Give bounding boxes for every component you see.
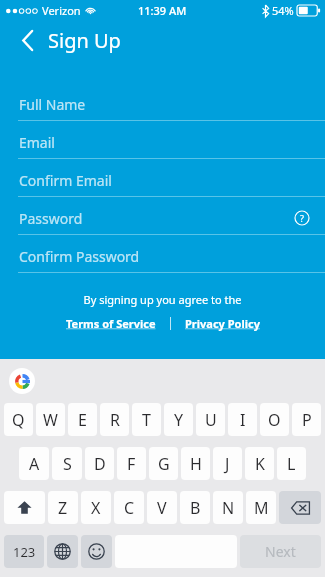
staticText: E <box>78 409 87 431</box>
button[interactable]: Back <box>12 25 42 55</box>
staticText: P <box>302 409 312 431</box>
staticText: H <box>190 453 202 475</box>
staticText: 54% <box>272 3 294 18</box>
staticText: X <box>91 497 101 519</box>
button[interactable]: C <box>114 491 144 524</box>
staticText: Q <box>12 409 25 431</box>
staticText: Sign Up <box>48 27 121 54</box>
button[interactable]: Next <box>240 535 321 568</box>
staticText: ? <box>300 212 304 224</box>
staticText: G <box>158 453 170 475</box>
staticText: V <box>157 497 167 519</box>
staticText: B <box>190 497 201 519</box>
staticText: L <box>287 453 296 475</box>
button[interactable]: H <box>181 447 210 480</box>
staticText: T <box>142 409 151 431</box>
staticText: Verizon <box>42 3 81 18</box>
staticText: Confirm Email <box>19 171 112 190</box>
staticText: I <box>240 409 246 431</box>
button[interactable]: Change language <box>47 535 78 568</box>
button[interactable]: Terms of Service <box>62 314 160 333</box>
button[interactable]: Y <box>164 403 193 436</box>
button[interactable]: Password <box>0 202 325 240</box>
button[interactable]: N <box>213 491 243 524</box>
button[interactable]: Q <box>4 403 33 436</box>
button[interactable]: D <box>85 447 114 480</box>
button[interactable]: J <box>213 447 242 480</box>
staticText: M <box>254 497 269 519</box>
staticText: 123 <box>13 543 36 561</box>
button[interactable]: G <box>149 447 178 480</box>
staticText: D <box>94 453 106 475</box>
button[interactable]: Google <box>9 368 35 394</box>
staticText: Y <box>174 409 184 431</box>
button[interactable]: Full Name <box>0 88 325 126</box>
button[interactable]: S <box>52 447 82 480</box>
staticText: C <box>124 497 135 519</box>
button[interactable]: Confirm Password <box>0 240 325 278</box>
staticText: U <box>205 409 217 431</box>
button[interactable]: Z <box>48 491 78 524</box>
staticText: Full Name <box>19 95 86 114</box>
staticText: By signing up you agree to the <box>0 292 325 307</box>
staticText: O <box>268 409 281 431</box>
button[interactable]: E <box>68 403 97 436</box>
button[interactable]: P <box>292 403 321 436</box>
button[interactable]: W <box>36 403 65 436</box>
staticText: Email <box>19 133 55 152</box>
staticText: R <box>110 409 120 431</box>
button[interactable]: Privacy Policy <box>181 314 264 333</box>
button[interactable]: A <box>19 447 49 480</box>
button[interactable]: Emoji <box>81 535 112 568</box>
button[interactable]: K <box>245 447 274 480</box>
button[interactable]: Shift <box>4 491 45 524</box>
staticText: K <box>255 453 265 475</box>
button[interactable]: B <box>180 491 210 524</box>
staticText: N <box>222 497 235 519</box>
staticText: S <box>63 453 72 475</box>
staticText: Confirm Password <box>19 247 140 266</box>
staticText: Password <box>19 209 83 228</box>
staticText: W <box>43 409 58 431</box>
button[interactable]: R <box>100 403 129 436</box>
staticText: F <box>127 453 136 475</box>
button[interactable]: X <box>81 491 111 524</box>
staticText: Terms of Service <box>66 316 156 331</box>
staticText: Z <box>58 497 68 519</box>
button[interactable]: I <box>228 403 257 436</box>
staticText: Next <box>265 542 296 561</box>
button[interactable]: T <box>132 403 161 436</box>
button[interactable]: Backspace <box>279 491 321 524</box>
button[interactable]: F <box>117 447 146 480</box>
button[interactable]: 123 <box>4 535 44 568</box>
staticText: J <box>225 453 230 475</box>
button[interactable]: Confirm Email <box>0 164 325 202</box>
button[interactable]: Email <box>0 126 325 164</box>
button[interactable]: Password help <box>291 207 313 229</box>
staticText: 11:39 AM <box>138 3 187 18</box>
button[interactable]: U <box>196 403 225 436</box>
staticText: A <box>29 453 40 475</box>
button[interactable]: L <box>277 447 306 480</box>
staticText: Privacy Policy <box>185 316 260 331</box>
button[interactable]: V <box>147 491 177 524</box>
button[interactable]: O <box>260 403 289 436</box>
button[interactable]: M <box>246 491 276 524</box>
